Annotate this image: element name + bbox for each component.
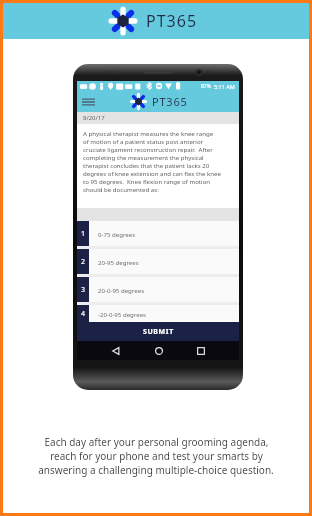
staticText: 0-75 degrees	[98, 230, 136, 238]
staticText: 3	[81, 285, 86, 295]
staticText: 8/20/17	[83, 114, 105, 122]
staticText: 1	[81, 229, 86, 239]
staticText: PT365	[146, 10, 198, 32]
button[interactable]: 3	[77, 277, 239, 302]
staticText: -20-0-95 degrees	[98, 310, 147, 318]
button[interactable]: Home	[151, 343, 166, 358]
staticText: PT365	[152, 94, 188, 109]
staticText: 4	[81, 309, 86, 319]
staticText: 20-0-95 degrees	[98, 286, 145, 294]
button[interactable]: 4	[77, 305, 239, 322]
button[interactable]: SUBMIT	[77, 322, 239, 341]
staticText: 2	[81, 257, 86, 267]
button[interactable]: Back	[108, 343, 123, 358]
staticText: reach for your phone and test your smart…	[50, 449, 263, 463]
staticText: 20-95 degrees	[98, 258, 139, 266]
button[interactable]: 2	[77, 249, 239, 274]
staticText: 87%	[201, 83, 211, 90]
staticText: 5:11 AM	[214, 83, 235, 90]
button[interactable]: Recent apps	[193, 343, 208, 358]
staticText: Each day after your personal grooming ag…	[44, 435, 269, 449]
staticText: SUBMIT	[143, 327, 174, 337]
button[interactable]: Open navigation menu	[77, 91, 99, 112]
staticText: A physical therapist measures the knee r…	[83, 129, 221, 193]
staticText: answering a challenging multiple-choice …	[38, 463, 274, 477]
button[interactable]: 1	[77, 221, 239, 246]
